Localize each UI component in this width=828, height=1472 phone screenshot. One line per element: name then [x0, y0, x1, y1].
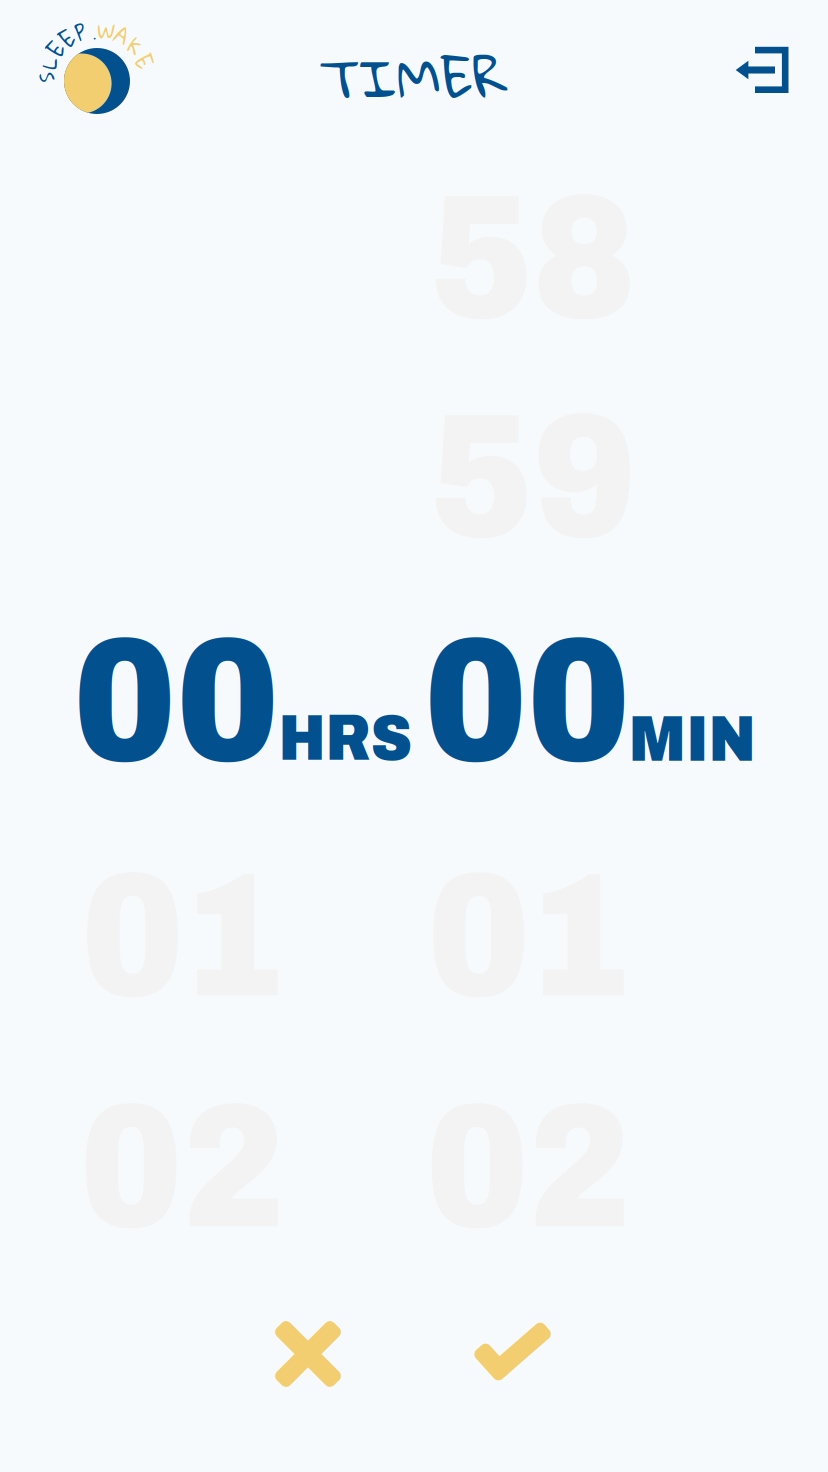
staticText: E [137, 42, 150, 82]
staticText: K [128, 27, 142, 67]
button[interactable]: Cancel [275, 1321, 341, 1387]
staticText: HRS [278, 702, 411, 774]
staticText: TIMER [319, 27, 508, 127]
staticText: A [115, 17, 128, 56]
staticText: S [41, 58, 51, 97]
staticText: 02 [79, 1073, 284, 1263]
staticText: 01 [81, 842, 283, 1032]
staticText: E [50, 30, 63, 69]
staticText: W [97, 11, 114, 51]
staticText: MIN [628, 703, 755, 775]
staticText: 00 [424, 607, 630, 797]
staticText: P [76, 13, 86, 52]
button[interactable]: Log out [734, 39, 796, 101]
staticText: 00 [73, 607, 279, 797]
staticText: . [91, 11, 95, 51]
button[interactable]: Confirm [472, 1323, 552, 1385]
staticText: E [61, 19, 74, 59]
staticText: 58 [430, 164, 636, 354]
staticText: L [43, 43, 55, 82]
button[interactable]: Sleep Wake [25, 15, 169, 147]
staticText: 02 [425, 1073, 630, 1263]
staticText: 59 [430, 383, 636, 573]
staticText: 01 [427, 842, 629, 1032]
